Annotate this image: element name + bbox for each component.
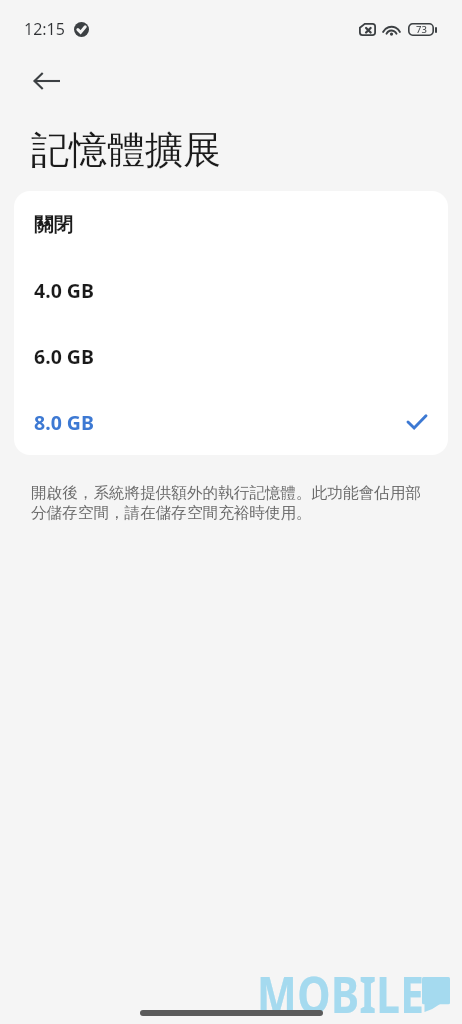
- staticText: 4.0 GB: [34, 277, 94, 304]
- staticText: 12:15: [24, 18, 65, 40]
- staticText: MOBILE: [257, 958, 424, 1024]
- button[interactable]: 4.0 GB: [14, 257, 448, 323]
- staticText: 6.0 GB: [34, 343, 94, 370]
- staticText: 記憶體擴展: [31, 126, 221, 174]
- button[interactable]: 6.0 GB: [14, 323, 448, 389]
- staticText: 8.0 GB: [34, 409, 94, 436]
- button[interactable]: Back: [19, 54, 73, 108]
- staticText: 開啟後，系統將提供額外的執行記憶體。此功能會佔用部分儲存空間，請在儲存空間充裕時…: [31, 483, 432, 523]
- staticText: 73: [416, 23, 427, 36]
- button[interactable]: 8.0 GB: [14, 389, 448, 455]
- button[interactable]: 關閉: [14, 191, 448, 257]
- staticText: 關閉: [34, 212, 73, 237]
